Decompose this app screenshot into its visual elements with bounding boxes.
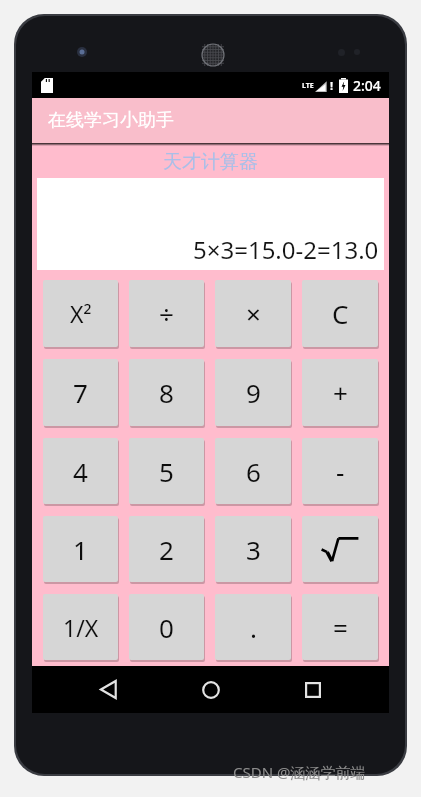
staticText: 6 <box>246 454 261 489</box>
staticText: CSDN @涵涵学前端 <box>233 762 366 782</box>
staticText: C <box>332 296 349 331</box>
button[interactable]: Recent apps <box>286 666 340 713</box>
button[interactable]: + <box>302 359 378 426</box>
button[interactable] <box>302 516 378 582</box>
staticText: × <box>246 296 261 331</box>
button[interactable]: 6 <box>215 438 291 504</box>
staticText: - <box>336 454 345 489</box>
button[interactable]: = <box>302 594 378 660</box>
button[interactable]: - <box>302 438 378 504</box>
button[interactable]: 8 <box>129 359 204 426</box>
staticText: + <box>333 375 348 410</box>
staticText: 4 <box>73 454 88 489</box>
button[interactable]: 7 <box>43 359 118 426</box>
staticText: 天才计算器 <box>163 150 258 174</box>
button[interactable]: Back <box>81 666 135 713</box>
button[interactable]: 4 <box>43 438 118 504</box>
button[interactable]: 2 <box>129 516 204 582</box>
button[interactable]: 9 <box>215 359 291 426</box>
staticText: 9 <box>246 375 261 410</box>
button[interactable]: ÷ <box>129 280 204 347</box>
staticText: . <box>250 610 257 645</box>
staticText: 3 <box>246 532 261 567</box>
staticText: 5 <box>159 454 174 489</box>
button[interactable]: C <box>302 280 378 347</box>
staticText: 2 <box>159 532 174 567</box>
staticText: X² <box>70 298 92 329</box>
staticText: 1/X <box>63 612 99 643</box>
staticText: ! <box>330 78 334 93</box>
staticText: 8 <box>159 375 174 410</box>
staticText: = <box>333 610 348 645</box>
staticText: 1 <box>73 532 88 567</box>
button[interactable]: 1 <box>43 516 118 582</box>
staticText: 在线学习小助手 <box>48 109 174 132</box>
button[interactable]: 5 <box>129 438 204 504</box>
button[interactable]: Home <box>184 666 238 713</box>
button[interactable]: 1/X <box>43 594 118 660</box>
staticText: 0 <box>159 610 174 645</box>
staticText: ÷ <box>159 296 174 331</box>
button[interactable]: . <box>215 594 291 660</box>
staticText: LTE <box>302 81 314 91</box>
staticText: 2:04 <box>353 76 381 95</box>
button[interactable]: X² <box>43 280 118 347</box>
button[interactable]: 3 <box>215 516 291 582</box>
button[interactable]: × <box>215 280 291 347</box>
button[interactable]: 在线学习小助手 <box>32 98 389 143</box>
staticText: 7 <box>73 375 88 410</box>
button[interactable]: 0 <box>129 594 204 660</box>
staticText: 5×3=15.0-2=13.0 <box>193 233 379 266</box>
